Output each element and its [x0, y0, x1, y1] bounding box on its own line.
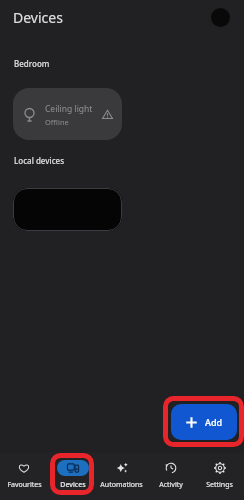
- staticText: Automations: [100, 480, 143, 490]
- button[interactable]: Automations: [97, 453, 146, 490]
- button[interactable]: Account: [211, 8, 230, 27]
- staticText: Activity: [159, 480, 183, 490]
- staticText: Devices: [60, 480, 86, 490]
- button[interactable]: Favourites: [0, 453, 48, 490]
- staticText: Settings: [206, 480, 233, 490]
- staticText: Ceiling light: [45, 103, 93, 115]
- staticText: Add: [205, 416, 223, 428]
- staticText: Favourites: [7, 480, 42, 490]
- button[interactable]: Settings: [195, 453, 244, 490]
- staticText: Offline: [45, 117, 69, 127]
- button[interactable]: [13, 188, 122, 231]
- button[interactable]: Ceiling light: [13, 88, 122, 140]
- staticText: Devices: [13, 8, 63, 27]
- button[interactable]: Add: [171, 404, 237, 440]
- staticText: Bedroom: [14, 58, 50, 69]
- staticText: Local devices: [14, 155, 65, 166]
- button[interactable]: Devices: [48, 453, 97, 490]
- button[interactable]: Activity: [146, 453, 195, 490]
